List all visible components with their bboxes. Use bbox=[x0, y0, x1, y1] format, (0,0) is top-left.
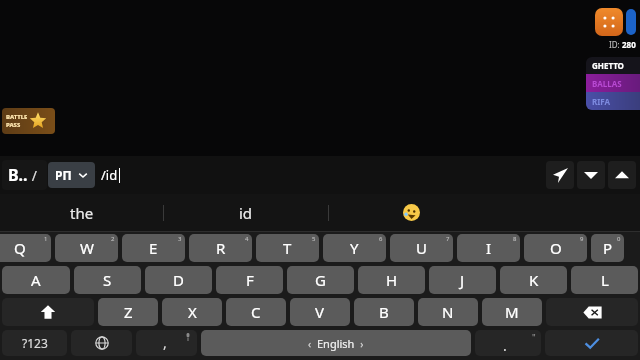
staticText: 9 bbox=[580, 235, 584, 243]
staticText: H bbox=[386, 270, 398, 290]
button[interactable]: G bbox=[287, 266, 354, 294]
staticText: the bbox=[70, 203, 94, 223]
staticText: X bbox=[188, 302, 197, 322]
button[interactable]: C bbox=[226, 298, 286, 326]
button[interactable] bbox=[2, 298, 94, 326]
button[interactable]: D bbox=[145, 266, 212, 294]
staticText: 5 bbox=[312, 235, 316, 243]
button[interactable]: Scroll up bbox=[608, 161, 636, 189]
staticText: K bbox=[529, 270, 539, 290]
staticText: R bbox=[216, 238, 226, 258]
staticText: V bbox=[315, 302, 325, 322]
staticText: T bbox=[283, 238, 292, 258]
button[interactable]: , bbox=[136, 330, 197, 356]
button[interactable]: the bbox=[0, 194, 163, 231]
button[interactable]: L bbox=[571, 266, 638, 294]
button[interactable]: B bbox=[354, 298, 414, 326]
staticText: D bbox=[173, 270, 184, 290]
staticText: English bbox=[317, 336, 355, 351]
button[interactable]: T bbox=[256, 234, 319, 262]
staticText: J bbox=[460, 270, 465, 290]
staticText: C bbox=[251, 302, 261, 322]
staticText: F bbox=[246, 270, 254, 290]
staticText: 1 bbox=[44, 235, 48, 243]
staticText: " bbox=[532, 331, 536, 343]
button[interactable]: M bbox=[482, 298, 542, 326]
button[interactable]: Send bbox=[546, 161, 574, 189]
button[interactable]: E bbox=[122, 234, 185, 262]
button[interactable]: F bbox=[216, 266, 283, 294]
button[interactable]: Menu bbox=[595, 8, 623, 36]
button[interactable] bbox=[71, 330, 132, 356]
button[interactable]: ?123 bbox=[2, 330, 67, 356]
button[interactable]: O bbox=[524, 234, 587, 262]
button[interactable]: J bbox=[429, 266, 496, 294]
other: Enter bbox=[583, 334, 601, 352]
staticText: N bbox=[442, 302, 454, 322]
staticText: PASS bbox=[6, 121, 21, 129]
button[interactable]: Y bbox=[323, 234, 386, 262]
button[interactable]: РП bbox=[48, 162, 95, 188]
button[interactable]: Scroll down bbox=[577, 161, 605, 189]
button[interactable]: BATTLE bbox=[2, 108, 55, 134]
button[interactable]: id bbox=[164, 194, 328, 231]
staticText: 4 bbox=[245, 235, 249, 243]
staticText: M bbox=[505, 302, 519, 322]
staticText: / bbox=[28, 166, 41, 185]
staticText: 6 bbox=[379, 235, 383, 243]
staticText: id bbox=[239, 203, 253, 223]
staticText: Z bbox=[124, 302, 133, 322]
button[interactable]: H bbox=[358, 266, 425, 294]
staticText: . bbox=[503, 336, 507, 355]
staticText: 7 bbox=[446, 235, 450, 243]
staticText: B.. bbox=[8, 164, 28, 186]
button[interactable]: I bbox=[457, 234, 520, 262]
staticText: W bbox=[80, 238, 94, 258]
staticText: P bbox=[603, 238, 613, 258]
staticText: RIFA bbox=[592, 96, 611, 107]
staticText: Y bbox=[350, 238, 359, 258]
button[interactable]: Enter bbox=[545, 330, 638, 356]
button[interactable]: X bbox=[162, 298, 222, 326]
staticText: 2 bbox=[111, 235, 115, 243]
staticText: 0 bbox=[617, 235, 621, 243]
button[interactable]: S bbox=[74, 266, 141, 294]
staticText: РП bbox=[55, 167, 72, 183]
button[interactable]: K bbox=[500, 266, 567, 294]
staticText: BALLAS bbox=[592, 78, 622, 89]
staticText: ?123 bbox=[22, 335, 48, 351]
staticText: /id bbox=[101, 166, 118, 184]
staticText: Q bbox=[14, 238, 26, 258]
staticText: BATTLE bbox=[6, 113, 28, 121]
staticText: ID: bbox=[609, 39, 622, 50]
button[interactable]: Emoji suggestion bbox=[329, 194, 493, 231]
staticText: E bbox=[149, 238, 158, 258]
button[interactable]: W bbox=[55, 234, 118, 262]
staticText: 8 bbox=[513, 235, 517, 243]
staticText: › bbox=[355, 337, 364, 351]
staticText: 3 bbox=[178, 235, 182, 243]
button[interactable]: A bbox=[2, 266, 70, 294]
staticText: B bbox=[379, 302, 389, 322]
button[interactable]: B.. bbox=[2, 160, 47, 190]
staticText: G bbox=[315, 270, 326, 290]
staticText: A bbox=[31, 270, 41, 290]
button[interactable]: N bbox=[418, 298, 478, 326]
button[interactable]: V bbox=[290, 298, 350, 326]
staticText: U bbox=[416, 238, 427, 258]
staticText: O bbox=[550, 238, 562, 258]
staticText: L bbox=[601, 270, 609, 290]
button[interactable]: Z bbox=[98, 298, 158, 326]
staticText: I bbox=[486, 238, 492, 258]
button[interactable]: . bbox=[475, 330, 541, 356]
button[interactable]: R bbox=[189, 234, 252, 262]
button[interactable]: Space bbox=[201, 330, 471, 356]
button[interactable]: U bbox=[390, 234, 453, 262]
staticText: GHETTO bbox=[592, 60, 624, 71]
button[interactable]: P bbox=[591, 234, 624, 262]
staticText: , bbox=[163, 333, 167, 352]
button[interactable]: Q bbox=[0, 234, 51, 262]
button[interactable] bbox=[546, 298, 638, 326]
staticText: S bbox=[103, 270, 112, 290]
staticText: ‹ bbox=[308, 337, 317, 351]
